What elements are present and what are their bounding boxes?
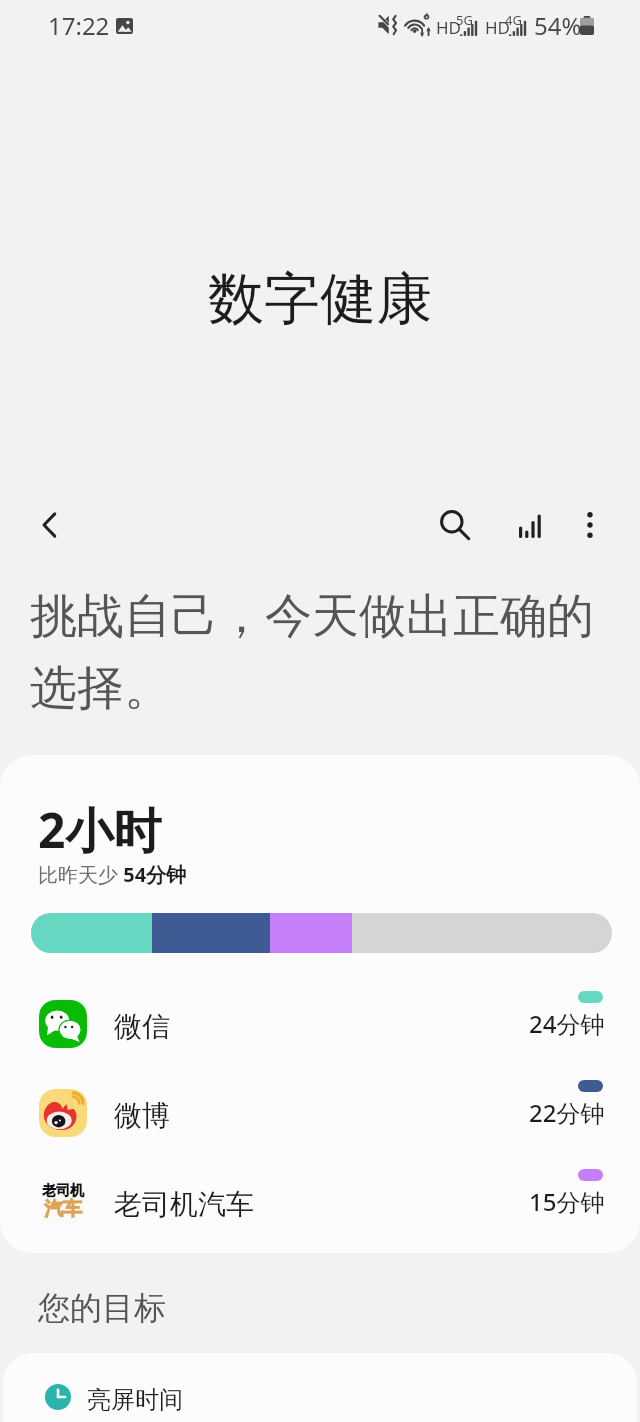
staticText: 亮屏时间 [87, 1385, 183, 1415]
staticText: 您的目标 [38, 1288, 166, 1328]
button[interactable]: Back [22, 497, 78, 553]
staticText: 22分钟 [529, 1096, 605, 1129]
staticText: 15分钟 [529, 1185, 605, 1218]
staticText: 4G [505, 11, 522, 29]
staticText: 2小时 [38, 797, 162, 863]
staticText: 微博 [114, 1098, 170, 1133]
button[interactable]: 老司机 [0, 1157, 640, 1246]
button[interactable]: Search [427, 497, 483, 553]
button[interactable]: Usage statistics [501, 497, 557, 553]
staticText: HD [485, 16, 511, 39]
staticText: 老司机汽车 [114, 1187, 254, 1222]
button[interactable]: 亮屏时间 [3, 1353, 637, 1422]
button[interactable]: More options [562, 497, 618, 553]
staticText: HD [436, 16, 462, 39]
staticText: 数字健康 [208, 264, 432, 335]
staticText: 老司机 [42, 1182, 84, 1200]
staticText: 挑战自己，今天做出正确的选择。 [30, 587, 628, 718]
staticText: 54% [534, 9, 582, 42]
button[interactable]: 微信 [0, 979, 640, 1068]
staticText: 比昨天少 54分钟 [38, 861, 187, 888]
staticText: 24分钟 [529, 1007, 605, 1040]
staticText: 微信 [114, 1009, 170, 1044]
staticText: 17:22 [48, 9, 110, 42]
staticText: 5G [456, 11, 473, 29]
button[interactable]: 微博 [0, 1068, 640, 1157]
staticText: 汽车 [44, 1197, 82, 1221]
